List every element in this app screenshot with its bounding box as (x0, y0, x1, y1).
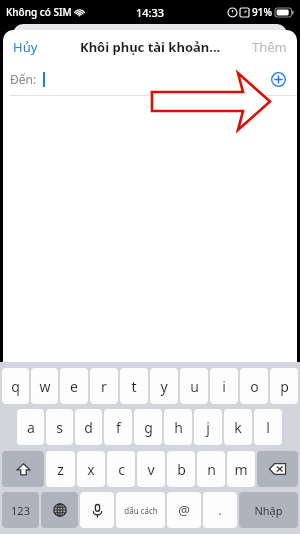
staticText: @ (178, 501, 190, 519)
button[interactable]: Change keyboard (41, 492, 78, 528)
staticText: h (174, 418, 183, 437)
button[interactable]: x (77, 451, 105, 487)
button[interactable]: y (150, 368, 178, 404)
staticText: g (144, 418, 153, 437)
button[interactable]: g (134, 409, 162, 445)
button[interactable]: i (210, 368, 238, 404)
staticText: . (218, 501, 222, 519)
staticText: k (234, 418, 242, 437)
button[interactable]: r (90, 368, 118, 404)
button[interactable]: 123 (2, 492, 39, 528)
staticText: t (131, 377, 137, 396)
button[interactable]: Shift (2, 451, 44, 487)
staticText: s (56, 418, 63, 437)
button[interactable]: o (240, 368, 268, 404)
button[interactable]: d (75, 409, 102, 445)
button[interactable]: z (46, 451, 75, 487)
button[interactable]: s (46, 409, 73, 445)
staticText: w (39, 377, 51, 396)
button[interactable]: v (137, 451, 165, 487)
button[interactable]: w (31, 368, 58, 404)
staticText: Không có SIM (6, 5, 72, 19)
button[interactable]: c (107, 451, 135, 487)
staticText: 123 (11, 503, 30, 518)
button[interactable]: m (227, 451, 255, 487)
staticText: m (234, 460, 248, 479)
staticText: i (222, 377, 226, 396)
button[interactable]: f (104, 409, 132, 445)
button[interactable]: p (270, 368, 298, 404)
staticText: 91% (252, 5, 272, 19)
staticText: l (266, 418, 270, 437)
staticText: b (177, 460, 186, 479)
button[interactable]: b (167, 451, 195, 487)
button[interactable]: @ (167, 492, 201, 528)
button[interactable]: Nhập (239, 492, 298, 528)
staticText: Khôi phục tài khoản... (80, 38, 221, 56)
button[interactable]: j (194, 409, 222, 445)
staticText: Thêm (252, 38, 287, 56)
staticText: q (11, 377, 20, 396)
button[interactable]: u (180, 368, 208, 404)
staticText: j (206, 418, 210, 437)
button[interactable]: Dictate (80, 492, 114, 528)
button[interactable]: . (203, 492, 237, 528)
staticText: z (57, 460, 64, 479)
staticText: Hủy (13, 38, 38, 56)
button[interactable]: n (197, 451, 225, 487)
staticText: 14:33 (136, 5, 165, 20)
staticText: r (101, 377, 107, 396)
staticText: e (70, 377, 78, 396)
staticText: c (118, 460, 125, 479)
staticText: o (250, 377, 259, 396)
button[interactable]: Backspace (257, 451, 298, 487)
button[interactable]: Thêm (242, 32, 297, 62)
staticText: dấu cách (124, 505, 158, 516)
button[interactable]: h (164, 409, 192, 445)
button[interactable]: dấu cách (116, 492, 165, 528)
button[interactable]: l (254, 409, 282, 445)
staticText: Đến: (10, 71, 37, 87)
staticText: p (280, 377, 289, 396)
staticText: v (147, 460, 155, 479)
staticText: d (84, 418, 93, 437)
staticText: u (190, 377, 199, 396)
staticText: n (207, 460, 216, 479)
button[interactable]: k (224, 409, 252, 445)
button[interactable]: q (2, 368, 29, 404)
button[interactable]: a (17, 409, 44, 445)
staticText: y (160, 377, 168, 396)
button[interactable]: t (120, 368, 148, 404)
staticText: Nhập (254, 503, 283, 518)
button[interactable]: e (60, 368, 88, 404)
staticText: f (116, 418, 121, 437)
button[interactable]: Add contact (267, 68, 289, 90)
staticText: a (27, 418, 35, 437)
staticText: x (87, 460, 95, 479)
button[interactable]: Hủy (3, 32, 48, 62)
